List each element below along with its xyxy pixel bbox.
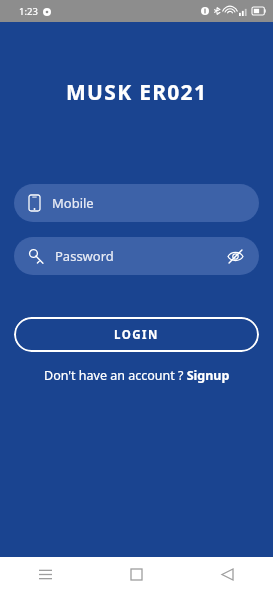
button[interactable]: Menu: [0, 557, 91, 592]
staticText: Password: [55, 247, 114, 265]
staticText: MUSK ER021: [66, 78, 208, 107]
button[interactable]: Password: [14, 237, 259, 275]
button[interactable]: Back: [182, 557, 273, 592]
staticText: Mobile: [52, 194, 94, 212]
staticText: 1:23: [19, 5, 38, 18]
staticText: Don't have an account ? Signup: [44, 367, 230, 384]
button[interactable]: Mobile: [14, 184, 259, 222]
button[interactable]: Show password: [225, 246, 245, 266]
staticText: LOGIN: [114, 327, 159, 343]
button[interactable]: Don't have an account ? Signup: [38, 364, 236, 387]
button[interactable]: Home: [91, 557, 182, 592]
button[interactable]: LOGIN: [14, 317, 259, 352]
